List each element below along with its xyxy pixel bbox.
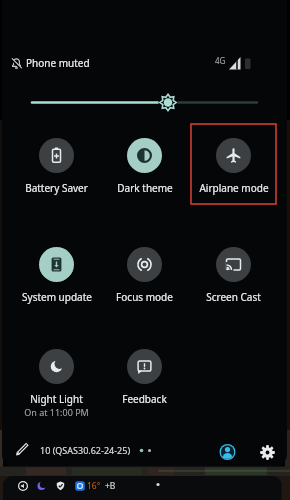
button[interactable]: Screen Cast (189, 247, 278, 307)
button[interactable]: Feedback (100, 349, 189, 409)
staticText: 16° (87, 480, 101, 492)
staticText: Feedback (122, 392, 167, 406)
button[interactable]: Dark theme (100, 138, 189, 198)
staticText: Night Light (30, 392, 83, 406)
button[interactable]: Battery Saver (12, 138, 101, 198)
staticText: Focus mode (116, 290, 173, 304)
button[interactable] (258, 443, 277, 462)
button[interactable] (24, 88, 274, 117)
staticText: +B (105, 480, 116, 492)
staticText: 10 (QSAS30.62-24-25) (40, 444, 131, 456)
button[interactable]: Focus mode (100, 247, 189, 307)
button[interactable]: Airplane mode (189, 138, 278, 198)
staticText: Screen Cast (206, 290, 261, 304)
staticText: 4G (215, 55, 226, 66)
staticText: On at 11:00 PM (24, 406, 89, 418)
staticText: System update (22, 290, 92, 304)
staticText: Dark theme (117, 181, 173, 195)
staticText: Battery Saver (25, 181, 88, 195)
button[interactable] (13, 439, 34, 459)
staticText: Phone muted (26, 56, 90, 70)
button[interactable]: System update (12, 247, 101, 307)
button[interactable]: Night Light (12, 349, 101, 423)
staticText: Airplane mode (199, 181, 269, 195)
button[interactable] (219, 443, 237, 461)
